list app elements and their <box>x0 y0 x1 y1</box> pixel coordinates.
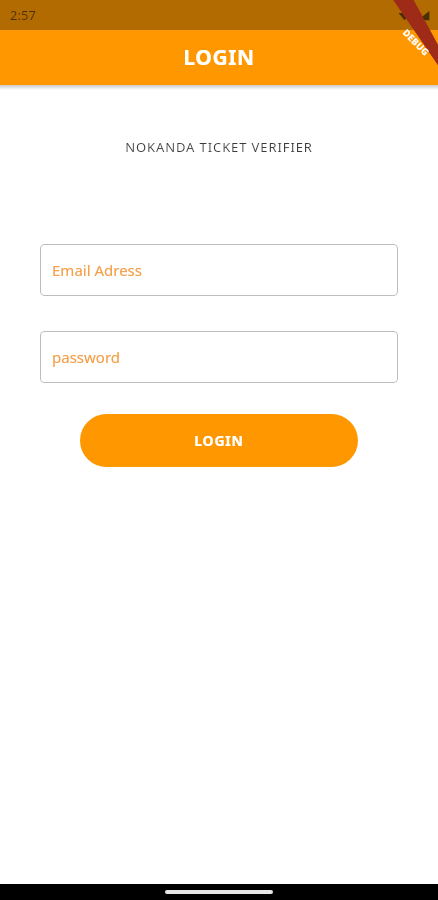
staticText: LOGIN <box>183 43 255 72</box>
button[interactable]: password <box>40 331 398 383</box>
staticText: Email Adress <box>52 260 142 280</box>
staticText: NOKANDA TICKET VERIFIER <box>125 138 313 156</box>
button[interactable]: Email Adress <box>40 244 398 296</box>
staticText: LOGIN <box>194 431 244 450</box>
staticText: 2:57 <box>10 6 36 24</box>
staticText: password <box>52 347 120 367</box>
staticText: DEBUG <box>401 26 432 58</box>
button[interactable]: LOGIN <box>80 414 358 467</box>
other: Debug banner <box>374 0 438 64</box>
